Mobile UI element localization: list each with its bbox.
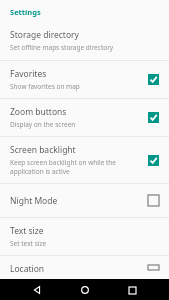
staticText: Keep screen backlight on while the appli… [10, 158, 140, 176]
button[interactable]: Text size [0, 218, 169, 255]
button[interactable]: Recent apps [122, 280, 142, 300]
button[interactable]: Location [0, 256, 169, 279]
staticText: Set offline maps storage directory [10, 43, 114, 52]
button[interactable]: Favorites [146, 72, 161, 87]
staticText: Screen backlight [10, 144, 76, 156]
staticText: Text size [10, 225, 44, 237]
button[interactable]: Back [27, 280, 47, 300]
staticText: Zoom buttons [10, 106, 67, 118]
staticText: Display on the screen [10, 120, 76, 129]
staticText: Set text size [10, 239, 47, 248]
staticText: Settings [10, 7, 41, 17]
staticText: Night Mode [10, 195, 58, 207]
button[interactable]: Night Mode [146, 193, 161, 208]
button[interactable]: Storage directory [0, 25, 169, 60]
button[interactable]: Favorites [0, 61, 169, 98]
button[interactable]: Screen backlight [146, 153, 161, 168]
button[interactable]: Location [146, 263, 161, 272]
button[interactable]: Zoom buttons [146, 110, 161, 125]
button[interactable]: Zoom buttons [0, 99, 169, 136]
staticText: Show favorites on map [10, 82, 80, 91]
staticText: Favorites [10, 68, 47, 80]
button[interactable]: Home [75, 280, 95, 300]
staticText: Location [10, 263, 45, 272]
button[interactable]: Night Mode [0, 184, 169, 217]
staticText: Storage directory [10, 29, 79, 41]
button[interactable]: Screen backlight [0, 137, 169, 183]
